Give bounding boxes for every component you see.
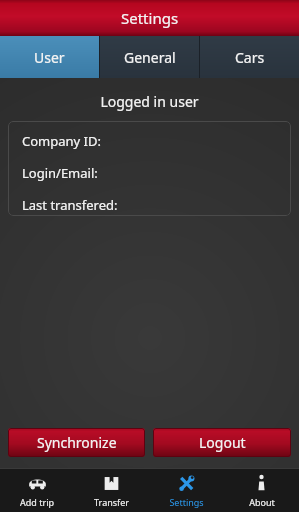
staticText: Last transfered: — [22, 196, 118, 214]
staticText: Logged in user — [0, 92, 299, 111]
staticText: Transfer — [94, 496, 129, 508]
staticText: Company ID: — [22, 132, 101, 150]
staticText: General — [124, 48, 176, 67]
button[interactable]: Logout — [153, 428, 291, 457]
staticText: Synchronize — [37, 433, 117, 452]
staticText: Settings — [169, 496, 204, 508]
button[interactable]: Settings — [149, 469, 224, 512]
staticText: Add trip — [20, 496, 54, 508]
staticText: User — [34, 48, 65, 67]
staticText: Login/Email: — [22, 164, 98, 182]
button[interactable]: General — [100, 36, 199, 78]
staticText: Settings — [121, 8, 179, 28]
button[interactable]: Synchronize — [8, 428, 145, 457]
button[interactable]: Add trip — [0, 469, 74, 512]
staticText: Cars — [235, 48, 265, 67]
button[interactable]: About — [224, 469, 299, 512]
staticText: About — [249, 496, 275, 508]
button[interactable]: Transfer — [74, 469, 149, 512]
button[interactable]: User — [0, 36, 99, 78]
staticText: Logout — [199, 433, 246, 452]
button[interactable]: Cars — [200, 36, 299, 78]
